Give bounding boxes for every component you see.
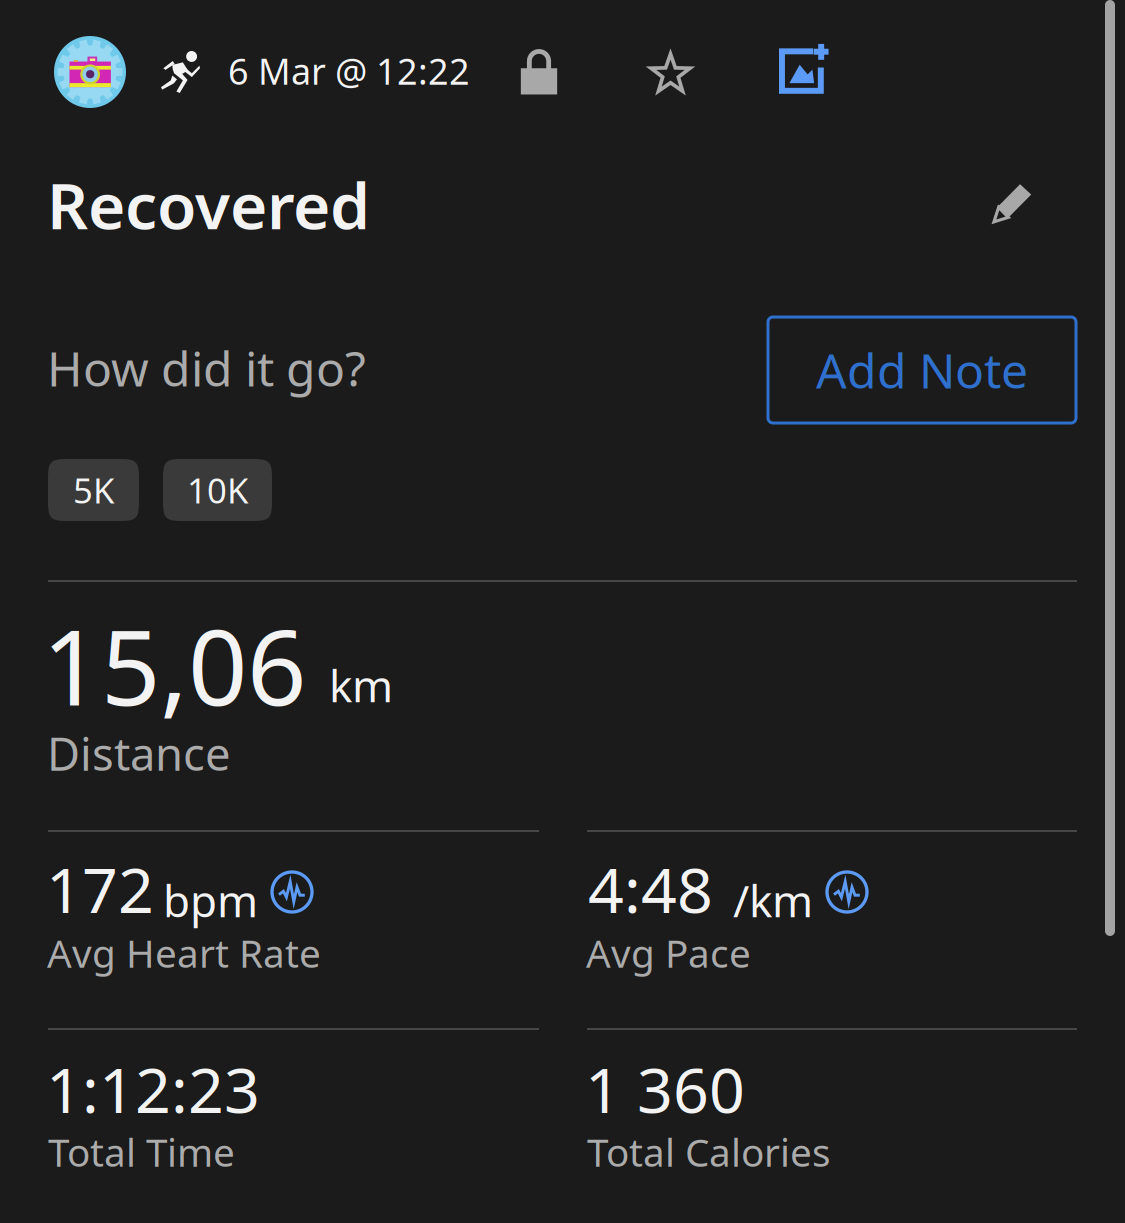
button[interactable]: Running workout <box>161 51 200 93</box>
button[interactable]: Profile <box>54 36 126 108</box>
staticText: 4:48 <box>588 847 713 930</box>
button[interactable]: 5K <box>48 459 139 521</box>
staticText: 15,06 <box>42 596 306 734</box>
staticText: Total Calories <box>587 1126 831 1177</box>
staticText: 172 <box>46 847 154 930</box>
staticText: How did it go? <box>47 336 366 400</box>
button[interactable]: Add Note <box>768 317 1076 423</box>
staticText: Recovered <box>47 162 370 247</box>
staticText: 1 360 <box>585 1047 745 1130</box>
staticText: Total Time <box>48 1126 235 1177</box>
button[interactable]: 10K <box>163 459 272 521</box>
staticText: Add Note <box>816 338 1028 402</box>
staticText: km <box>329 656 393 714</box>
staticText: Avg Pace <box>586 927 751 978</box>
staticText: 1:12:23 <box>46 1047 260 1130</box>
staticText: bpm <box>163 871 258 929</box>
staticText: 6 Mar @ 12:22 <box>228 47 470 95</box>
button[interactable]: Edit workout name <box>991 181 1034 224</box>
staticText: /km <box>733 871 813 929</box>
button[interactable]: Add photo <box>779 41 832 94</box>
button[interactable]: Private <box>516 48 562 94</box>
staticText: Distance <box>47 723 231 783</box>
staticText: Avg Heart Rate <box>47 927 321 978</box>
staticText: 5K <box>73 467 114 513</box>
button[interactable]: Favourite <box>648 50 693 95</box>
staticText: 10K <box>187 467 248 513</box>
